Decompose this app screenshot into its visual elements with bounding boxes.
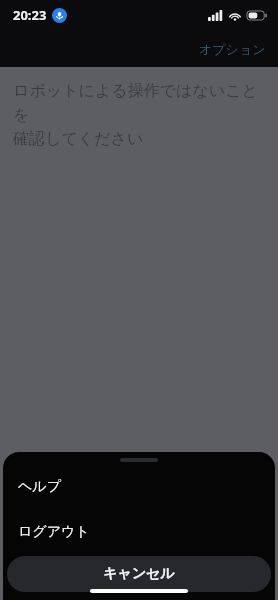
staticText: ログアウト xyxy=(18,523,90,541)
staticText: キャンセル xyxy=(103,565,175,583)
staticText: ロボットによる操作ではないことを 確認してください xyxy=(13,81,270,149)
button[interactable]: ヘルプ xyxy=(3,464,275,509)
button[interactable]: ログアウト xyxy=(3,509,275,554)
staticText: 20:23 xyxy=(13,6,47,24)
button[interactable]: オプション xyxy=(195,38,270,60)
staticText: ヘルプ xyxy=(18,478,61,496)
other: Microphone in use xyxy=(52,8,67,23)
button[interactable]: キャンセル xyxy=(7,556,271,592)
staticText: オプション xyxy=(199,41,266,57)
